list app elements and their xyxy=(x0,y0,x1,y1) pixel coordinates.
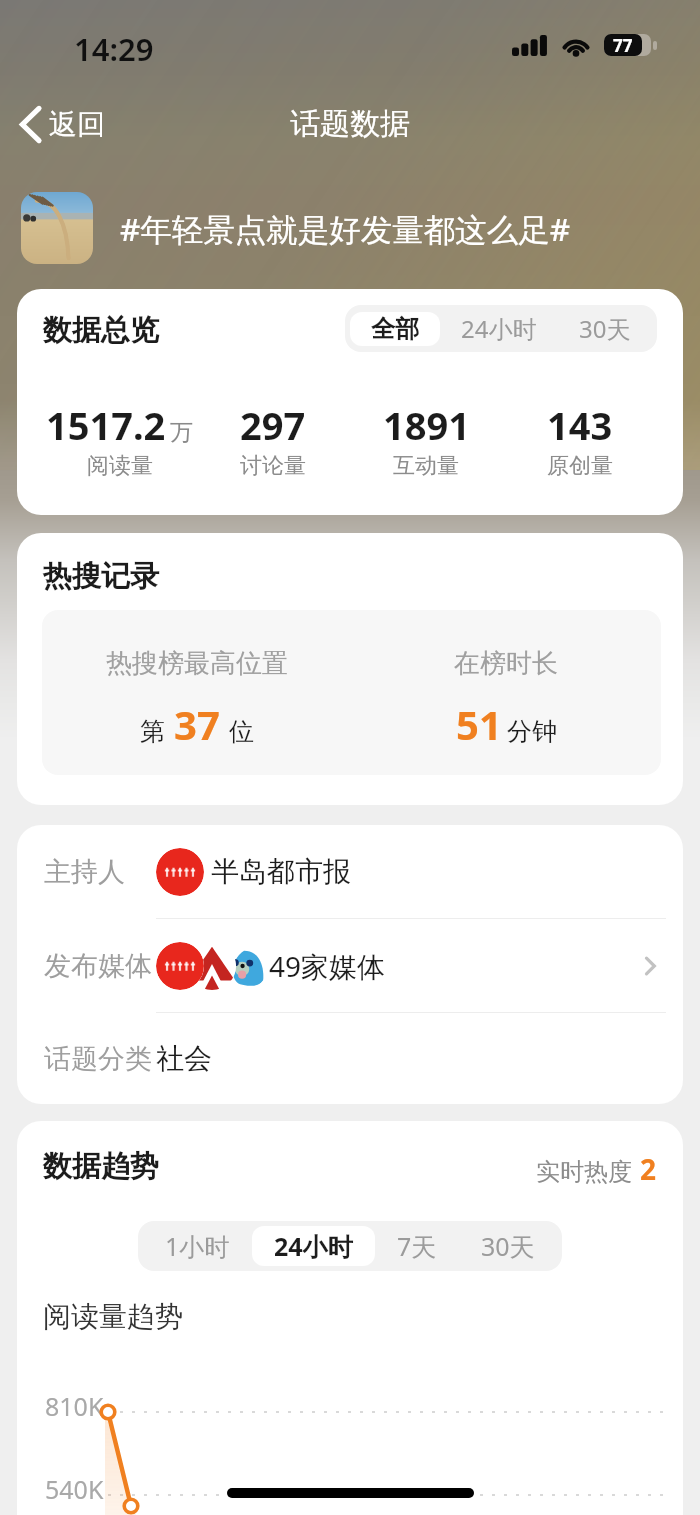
staticText: 互动量 xyxy=(393,452,459,480)
staticText: 30天 xyxy=(579,312,631,345)
staticText: 阅读量 xyxy=(87,452,153,480)
staticText: #年轻景点就是好发量都这么足# xyxy=(120,207,571,250)
staticText: 37 xyxy=(174,697,220,751)
button[interactable]: 24小时 xyxy=(252,1226,375,1266)
staticText: 原创量 xyxy=(547,452,613,480)
staticText: 讨论量 xyxy=(240,452,306,480)
staticText: 297 xyxy=(240,399,306,451)
staticText: 返回 xyxy=(49,107,105,142)
staticText: 数据趋势 xyxy=(43,1148,159,1185)
staticText: 810K xyxy=(45,1389,104,1423)
staticText: 热搜榜最高位置 xyxy=(106,647,288,680)
staticText: 2 xyxy=(640,1150,657,1188)
staticText: 全部 xyxy=(371,314,419,344)
staticText: 143 xyxy=(547,399,613,451)
staticText: 实时热度 xyxy=(536,1157,632,1187)
button[interactable]: 30天 xyxy=(558,310,652,347)
button[interactable]: 24小时 xyxy=(440,310,558,347)
button[interactable]: 全部 xyxy=(350,312,440,346)
staticText: 热搜记录 xyxy=(43,558,159,595)
staticText: 主持人 xyxy=(44,855,125,889)
staticText: 49家媒体 xyxy=(269,947,386,985)
staticText: 540K xyxy=(45,1472,104,1506)
button[interactable]: 7天 xyxy=(375,1226,459,1266)
staticText: 第 xyxy=(140,716,165,747)
staticText: 51 xyxy=(456,697,502,751)
staticText: 半岛都市报 xyxy=(211,854,351,889)
staticText: 24小时 xyxy=(274,1229,353,1263)
button[interactable]: 30天 xyxy=(459,1226,557,1266)
staticText: 话题分类 xyxy=(44,1042,152,1076)
staticText: 30天 xyxy=(481,1229,535,1263)
staticText: 1517.2 xyxy=(46,399,166,451)
staticText: 1小时 xyxy=(165,1229,230,1263)
staticText: 社会 xyxy=(156,1041,212,1076)
staticText: 数据总览 xyxy=(43,312,159,349)
staticText: 万 xyxy=(170,418,193,447)
staticText: 1891 xyxy=(383,399,470,451)
button[interactable]: 返回 xyxy=(12,101,113,148)
staticText: 24小时 xyxy=(461,312,537,345)
staticText: 位 xyxy=(229,716,254,747)
staticText: 7天 xyxy=(397,1229,437,1263)
staticText: 分钟 xyxy=(507,716,557,747)
staticText: 77 xyxy=(613,34,633,56)
staticText: 话题数据 xyxy=(290,105,410,143)
button[interactable]: 发布媒体 xyxy=(17,919,683,1012)
staticText: 阅读量趋势 xyxy=(43,1299,183,1334)
button[interactable]: 1小时 xyxy=(143,1226,252,1266)
staticText: 在榜时长 xyxy=(454,647,558,680)
staticText: 14:29 xyxy=(74,28,154,70)
button[interactable]: 主持人 xyxy=(17,825,683,918)
staticText: 发布媒体 xyxy=(44,949,152,983)
